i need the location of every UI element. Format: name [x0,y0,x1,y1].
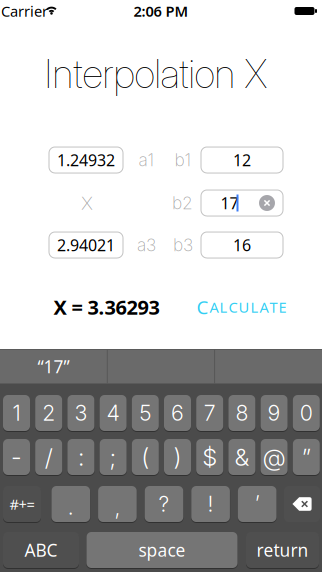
staticText: 3 [74,400,87,426]
button[interactable] [201,190,283,216]
staticText: ) [173,442,181,471]
staticText: 6 [171,400,184,426]
staticText: 9 [268,400,281,426]
staticText: 12 [233,149,251,171]
staticText: return [256,538,308,561]
button[interactable]: ! [191,486,230,522]
staticText: 16 [233,234,251,256]
button[interactable]: 4 [100,395,127,431]
button[interactable]: 5 [132,395,159,431]
button[interactable]: ’ [238,486,276,522]
staticText: T [269,297,277,317]
staticText: / [45,442,53,471]
staticText: ABC [24,538,57,561]
button[interactable]: 9 [261,395,288,431]
staticText: - [11,442,22,471]
button[interactable]: 6 [164,395,191,431]
staticText: . [68,494,74,520]
staticText: ” [302,442,311,471]
button[interactable]: 12 [201,147,283,173]
staticText: L [219,297,227,317]
button[interactable]: return [246,532,319,568]
staticText: ; [110,442,117,471]
button[interactable]: ” [293,439,320,475]
staticText: space [138,538,185,561]
button[interactable]: 8 [228,395,255,431]
staticText: C [228,297,237,317]
button[interactable]: 0 [293,395,320,431]
button[interactable]: ( [132,439,159,475]
staticText: ( [141,442,149,471]
staticText: #+= [9,494,34,514]
button[interactable]: - [3,439,30,475]
staticText: E [278,297,286,317]
staticText: 0 [300,400,313,426]
staticText: X = 3.36293 [53,294,159,320]
staticText: Interpolation X [44,51,267,97]
staticText: 2 [42,400,55,426]
staticText: a3 [137,234,156,255]
staticText: 2:06 PM [133,1,188,21]
button[interactable]: ? [145,486,183,522]
staticText: ? [158,491,169,517]
staticText: U [238,297,249,317]
staticText: b2 [172,192,193,213]
staticText: a1 [138,149,154,170]
staticText: 1.24932 [57,149,115,171]
button[interactable]: / [35,439,62,475]
button[interactable]: #+= [3,486,41,522]
button[interactable]: . [51,486,90,522]
button[interactable]: 2 [35,395,62,431]
staticText: , [114,494,120,520]
staticText: X [81,192,93,214]
staticText: A [209,297,218,317]
staticText: & [234,442,249,471]
staticText: 8 [235,400,248,426]
staticText: L [250,297,258,317]
staticText: ! [208,491,214,517]
button[interactable]: ; [100,439,127,475]
button[interactable]: ABC [3,532,79,568]
button[interactable]: 1 [3,395,30,431]
staticText: @ [263,442,286,471]
button[interactable]: 16 [201,232,283,258]
staticText: C [196,295,208,319]
staticText: 5 [139,400,151,426]
button[interactable]: 3 [67,395,94,431]
button[interactable]: 7 [196,395,223,431]
button[interactable]: $ [196,439,223,475]
staticText: ’ [255,490,260,516]
staticText: 4 [107,400,120,426]
button[interactable]: Delete [284,486,320,522]
staticText: 17 [220,192,238,214]
staticText: Carrier [1,1,48,21]
button[interactable]: Clear text [259,195,275,211]
staticText: b1 [174,149,191,170]
staticText: $ [202,442,217,471]
button[interactable]: ) [164,439,191,475]
button[interactable]: & [228,439,255,475]
staticText: 1 [12,400,20,426]
staticText: 2.94021 [57,234,115,256]
button[interactable]: , [98,486,137,522]
button[interactable]: 1.24932 [49,147,123,173]
button[interactable]: 2.94021 [49,232,123,258]
button[interactable]: @ [261,439,288,475]
staticText: A [259,297,268,317]
staticText: 7 [204,400,216,426]
button[interactable]: space [86,532,237,568]
staticText: : [78,442,84,471]
button[interactable]: : [67,439,94,475]
button[interactable]: C [196,298,286,316]
staticText: b3 [173,234,193,255]
staticText: “17” [37,355,69,378]
button[interactable]: “17” [0,349,107,383]
